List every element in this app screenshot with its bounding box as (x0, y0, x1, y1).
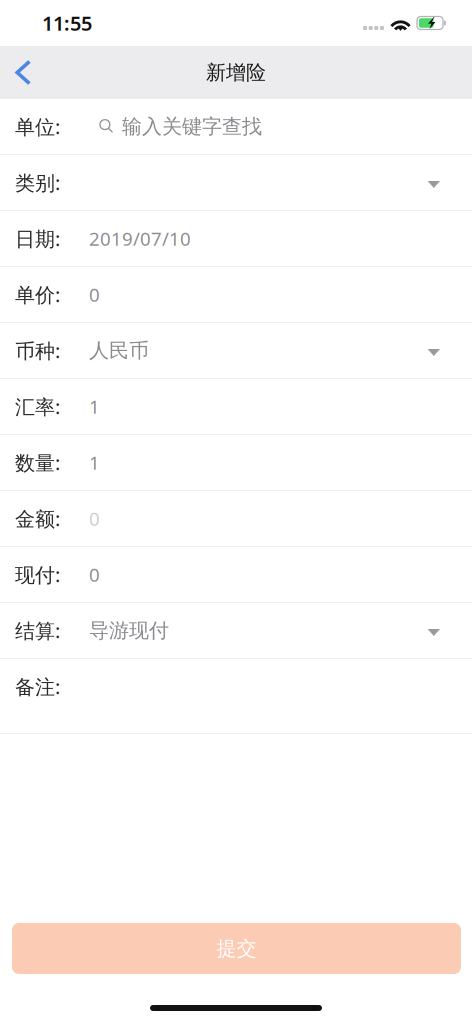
staticText: 结算: (15, 617, 60, 644)
staticText: 单价: (15, 281, 60, 308)
staticText: 输入关键字查找 (122, 114, 262, 139)
button[interactable]: Back (0, 46, 58, 99)
staticText: 币种: (15, 337, 60, 364)
staticText: 新增险 (206, 60, 266, 85)
staticText: 0 (89, 562, 100, 587)
button[interactable]: 结算: (0, 603, 472, 659)
button[interactable]: 单位: (0, 99, 472, 155)
staticText: 日期: (15, 225, 60, 252)
staticText: 0 (89, 282, 100, 307)
staticText: 类别: (15, 169, 60, 196)
staticText: 1 (89, 450, 100, 475)
button[interactable]: 单价: (0, 267, 472, 323)
button[interactable]: 汇率: (0, 379, 472, 435)
button[interactable]: 金额: (0, 491, 472, 547)
button[interactable]: 日期: (0, 211, 472, 267)
staticText: 金额: (15, 505, 60, 532)
staticText: 单位: (15, 113, 60, 140)
staticText: 2019/07/10 (89, 226, 191, 251)
staticText: 0 (89, 506, 100, 531)
staticText: 11:55 (42, 10, 92, 36)
staticText: 现付: (15, 561, 60, 588)
staticText: 人民币 (89, 338, 149, 363)
staticText: 备注: (15, 673, 60, 700)
staticText: 汇率: (15, 393, 60, 420)
button[interactable]: 现付: (0, 547, 472, 603)
button[interactable]: 备注: (0, 659, 472, 734)
button[interactable]: 提交 (12, 923, 461, 974)
button[interactable]: 数量: (0, 435, 472, 491)
button[interactable]: 类别: (0, 155, 472, 211)
staticText: 1 (89, 394, 100, 419)
staticText: 提交 (216, 936, 256, 961)
button[interactable]: 币种: (0, 323, 472, 379)
staticText: 数量: (15, 449, 60, 476)
staticText: 导游现付 (89, 618, 169, 643)
